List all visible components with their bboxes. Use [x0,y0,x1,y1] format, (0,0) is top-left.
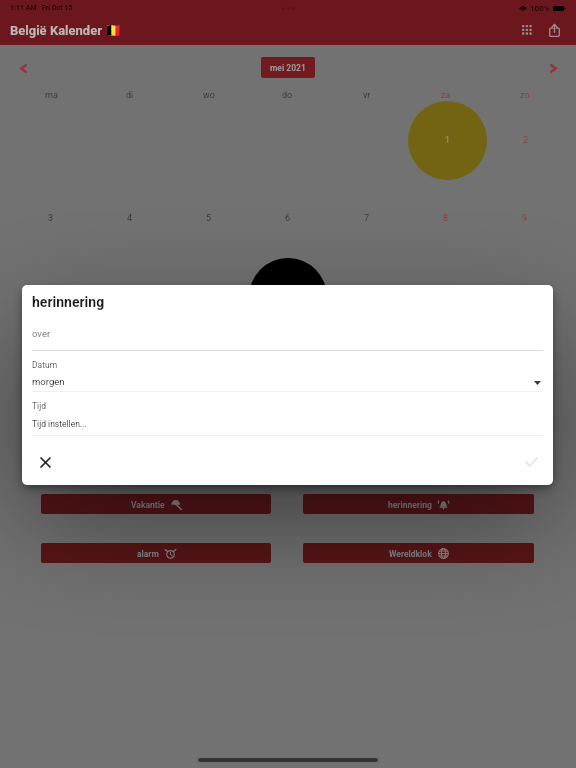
staticText: mei 2021 [270,63,306,73]
staticText: 6 [285,213,291,224]
staticText: 2 [523,135,529,146]
staticText: za [441,90,451,101]
staticText: 4 [127,213,133,224]
staticText: 9 [522,213,528,224]
staticText: 7 [364,213,370,224]
button[interactable]: Previous month [13,58,33,78]
staticText: 5 [206,213,212,224]
button[interactable]: Wereldklok [303,543,534,563]
staticText: België Kalender 🇧🇪 [10,23,122,38]
button[interactable]: Cancel [32,449,58,475]
staticText: zo [520,90,530,101]
button[interactable]: Vakantie [41,494,271,514]
staticText: 8 [443,213,449,224]
staticText: 1:11 AM Fri Oct 15 [10,4,73,12]
button[interactable]: Add event [249,258,327,336]
staticText: Vakantie [131,500,165,510]
button[interactable]: Next month [543,58,563,78]
staticText: Datum [32,360,58,370]
button[interactable]: herinnering [303,494,534,514]
staticText: Wereldklok [389,549,432,559]
staticText: vr [363,90,371,101]
staticText: herinnering [32,294,105,310]
button[interactable]: Share [542,18,566,42]
staticText: Tijd instellen... [32,419,87,429]
button[interactable]: mei 2021 [261,57,315,78]
staticText: Tijd [32,401,46,411]
staticText: alarm [137,549,159,559]
staticText: do [282,90,293,101]
staticText: 3 [48,213,54,224]
staticText: morgen [32,376,65,387]
button[interactable]: alarm [41,543,271,563]
staticText: over [32,328,51,339]
staticText: 1 [445,135,451,146]
button[interactable]: Confirm [518,449,544,475]
staticText: herinnering [388,500,432,510]
button[interactable]: Apps [514,18,538,42]
staticText: ma [45,90,58,101]
staticText: wo [203,90,215,101]
button[interactable]: 1 [408,101,487,180]
staticText: 100% [530,4,550,13]
staticText: di [126,90,134,101]
